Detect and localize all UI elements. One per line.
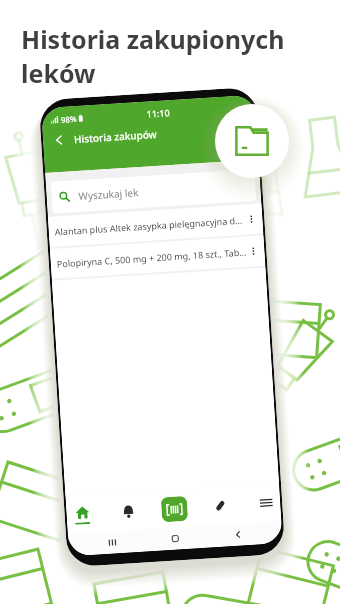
button[interactable]: More options	[244, 212, 259, 227]
button[interactable]: Alantan plus Altek zasypka pielęgnacyjna…	[48, 203, 263, 247]
button[interactable]: Notifications	[115, 497, 142, 526]
staticText: Wyszukaj lek	[78, 185, 139, 203]
button[interactable]: Polopiryna C, 500 mg + 200 mg, 18 szt., …	[50, 235, 265, 279]
staticText: Alantan plus Altek zasypka pielęgnacyjna…	[54, 214, 245, 237]
button[interactable]: Menu	[252, 488, 280, 518]
button[interactable]: Back	[49, 130, 69, 150]
staticText: 98%	[60, 113, 77, 125]
staticText: Historia zakupionych	[21, 22, 285, 56]
button[interactable]: Medicines	[206, 491, 234, 520]
staticText: 11:10	[146, 106, 171, 120]
staticText: leków	[21, 56, 96, 90]
button[interactable]: More options	[246, 244, 261, 259]
staticText: Historia zakupów	[74, 127, 157, 146]
button[interactable]: Documents folder	[215, 104, 289, 178]
staticText: Polopiryna C, 500 mg + 200 mg, 18 szt., …	[56, 246, 247, 269]
button[interactable]: Home	[67, 498, 97, 531]
button[interactable]: Wyszukaj lek	[51, 169, 256, 214]
button[interactable]: Scan barcode	[161, 496, 188, 522]
